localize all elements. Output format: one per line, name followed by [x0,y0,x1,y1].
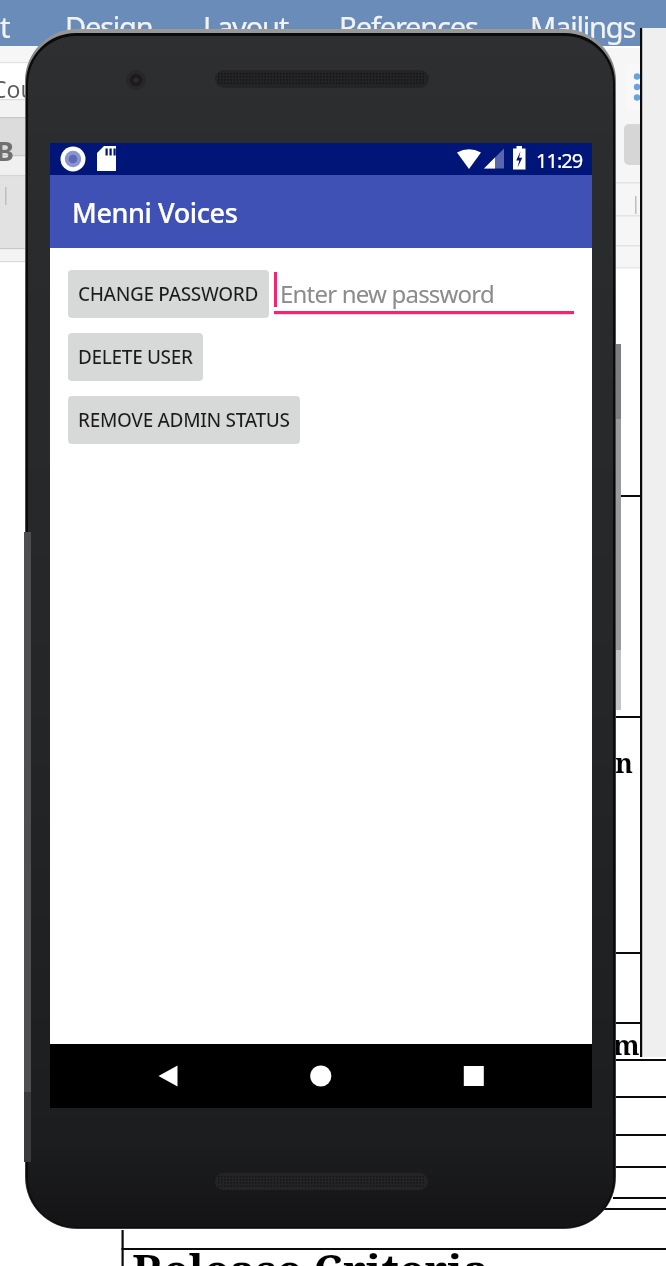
staticText: DELETE USER [78,344,193,370]
button[interactable]: Back [140,1044,196,1108]
button[interactable]: REMOVE ADMIN STATUS [68,396,300,444]
button[interactable]: CHANGE PASSWORD [68,270,269,318]
staticText: Menni Voices [72,194,238,231]
staticText: References [339,7,478,46]
button[interactable]: DELETE USER [68,333,203,381]
staticText: Layout [203,7,288,46]
staticText: Design [65,7,153,46]
staticText: n [615,744,634,781]
staticText: me [613,1026,656,1063]
staticText: Enter new password [280,277,494,310]
button[interactable]: Home [293,1044,349,1108]
staticText: Mailings [530,7,636,46]
staticText: CHANGE PASSWORD [78,281,259,307]
staticText: B [0,132,14,169]
staticText: Cou [0,73,35,104]
staticText: 11:29 [536,147,583,174]
staticText: REMOVE ADMIN STATUS [78,407,290,433]
button[interactable]: Recent apps [446,1044,502,1108]
staticText: t [0,7,10,46]
staticText: Release Criteria [132,1239,490,1266]
